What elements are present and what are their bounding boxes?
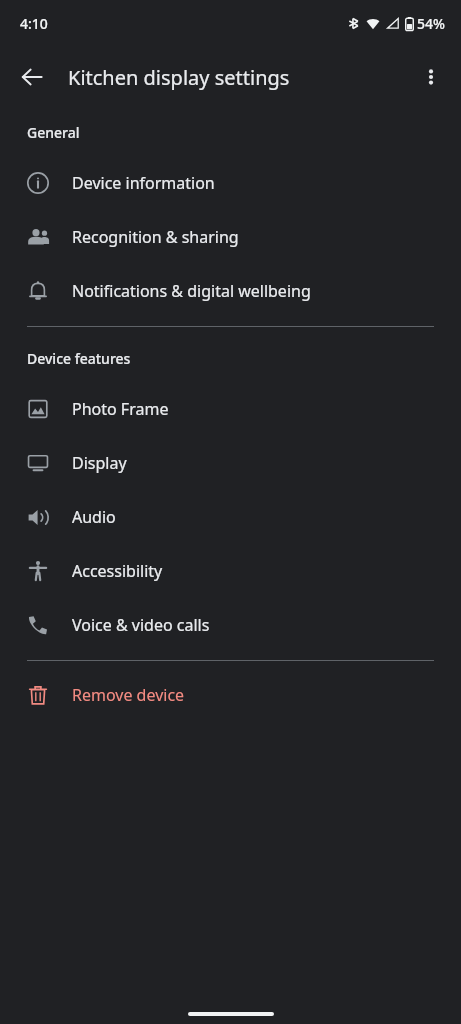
staticText: Device features [27, 349, 131, 368]
button[interactable]: Device information [0, 156, 461, 210]
staticText: Display [72, 452, 127, 474]
staticText: Voice & video calls [72, 614, 210, 636]
button[interactable]: Remove device [0, 668, 461, 722]
staticText: Device information [72, 172, 215, 194]
button[interactable]: Audio [0, 490, 461, 544]
staticText: Kitchen display settings [68, 64, 290, 91]
button[interactable]: Accessibility [0, 544, 461, 598]
button[interactable]: Notifications & digital wellbeing [0, 264, 461, 318]
button[interactable]: Voice & video calls [0, 598, 461, 652]
staticText: Notifications & digital wellbeing [72, 280, 311, 302]
staticText: Recognition & sharing [72, 226, 239, 248]
staticText: General [27, 123, 80, 142]
button[interactable]: Recognition & sharing [0, 210, 461, 264]
staticText: Photo Frame [72, 398, 169, 420]
button[interactable]: Back [10, 55, 54, 99]
button[interactable]: Display [0, 436, 461, 490]
staticText: Accessibility [72, 560, 163, 582]
staticText: 4:10 [20, 14, 48, 33]
staticText: Audio [72, 506, 116, 528]
staticText: Remove device [72, 684, 185, 706]
staticText: 54% [417, 14, 445, 33]
button[interactable]: More options [409, 55, 453, 99]
button[interactable]: Photo Frame [0, 382, 461, 436]
